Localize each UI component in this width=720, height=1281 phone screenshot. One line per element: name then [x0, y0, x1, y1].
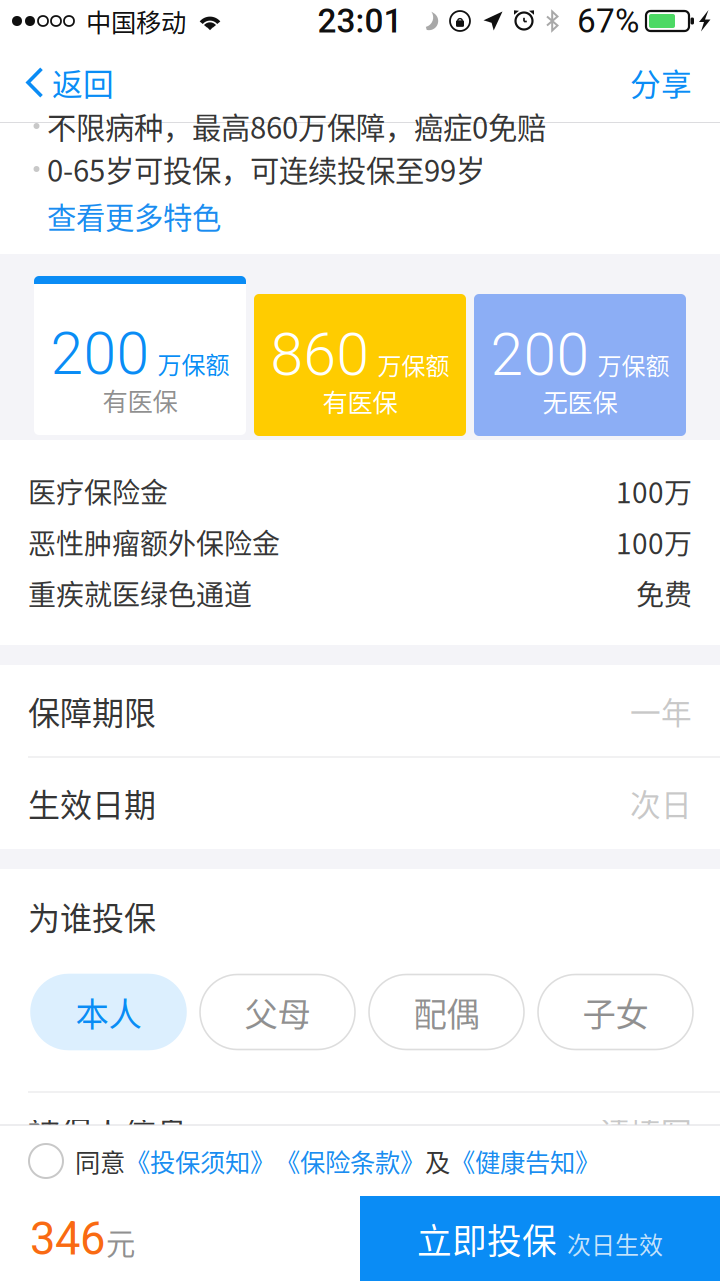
button[interactable]: 《投保须知》 [125, 1143, 275, 1179]
staticText: 200 [50, 320, 149, 388]
staticText: 《保险条款》 [275, 1143, 425, 1179]
staticText: 23:01 [317, 1, 402, 41]
staticText: 被保人信息 [28, 1108, 188, 1154]
staticText: 不限病种，最高860万保障，癌症0免赔 [47, 105, 546, 147]
staticText: 万保额 [157, 346, 229, 381]
button[interactable]: 返回 [0, 42, 134, 123]
staticText: 医疗保险金 [28, 471, 168, 511]
staticText: 中国移动 [86, 3, 186, 39]
button[interactable]: 生效日期 [0, 757, 720, 849]
button[interactable]: 200 [474, 294, 686, 436]
staticText: 万保额 [377, 347, 449, 382]
staticText: 恶性肿瘤额外保险金 [28, 522, 280, 562]
staticText: 生效日期 [28, 780, 156, 826]
staticText: 保障期限 [28, 688, 156, 734]
staticText: 有医保 [322, 383, 397, 419]
staticText: 父母 [244, 988, 310, 1036]
button[interactable]: 《健康告知》 [450, 1143, 600, 1179]
staticText: 100万 [616, 522, 692, 562]
staticText: 分享 [630, 60, 692, 105]
staticText: 免费 [636, 573, 692, 613]
button[interactable]: 保障期限 [0, 665, 720, 757]
staticText: 《投保须知》 [125, 1143, 275, 1179]
staticText: 一年 [630, 689, 692, 733]
button[interactable]: 200 [34, 276, 246, 435]
staticText: 0-65岁可投保，可连续投保至99岁 [47, 148, 485, 190]
button[interactable]: 查看更多特色 [47, 197, 247, 235]
button[interactable]: 本人 [31, 974, 186, 1049]
staticText: 346 [30, 1212, 105, 1265]
staticText: 立即投保 [417, 1214, 557, 1264]
button[interactable]: 父母 [200, 974, 355, 1049]
staticText: 次日生效 [567, 1226, 663, 1261]
staticText: 无医保 [542, 383, 617, 419]
staticText: 请填写 [599, 1109, 692, 1153]
button[interactable]: 860 [254, 294, 466, 436]
staticText: 有医保 [102, 382, 177, 418]
staticText: 860 [270, 321, 369, 389]
button[interactable]: 《保险条款》 [275, 1143, 425, 1179]
staticText: 为谁投保 [28, 893, 156, 939]
button[interactable]: 同意条款 [0, 1126, 75, 1196]
staticText: 重疾就医绿色通道 [28, 573, 252, 613]
staticText: 次日 [630, 781, 692, 825]
staticText: 配偶 [413, 988, 479, 1036]
staticText: 查看更多特色 [47, 195, 221, 237]
staticText: 本人 [75, 988, 141, 1036]
staticText: 《健康告知》 [450, 1143, 600, 1179]
staticText: 万保额 [597, 347, 669, 382]
button[interactable]: 配偶 [369, 974, 524, 1049]
staticText: 返回 [52, 60, 114, 105]
staticText: 同意 [75, 1143, 125, 1179]
staticText: 元 [106, 1220, 135, 1263]
button[interactable]: 子女 [538, 974, 693, 1049]
staticText: 67% [577, 1, 639, 41]
staticText: 及 [425, 1143, 450, 1179]
staticText: 100万 [616, 471, 692, 511]
button[interactable]: 分享 [610, 42, 720, 123]
button[interactable]: 立即投保 [360, 1196, 720, 1281]
staticText: 200 [490, 321, 589, 389]
staticText: 子女 [582, 988, 648, 1036]
